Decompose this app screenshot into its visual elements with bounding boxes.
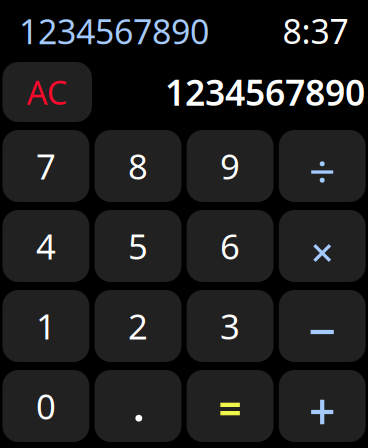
button[interactable]: AC — [2, 62, 92, 122]
button[interactable]: Multiply — [279, 210, 366, 282]
staticText: 0 — [36, 383, 56, 429]
staticText: 9 — [220, 143, 240, 189]
staticText: AC — [27, 70, 68, 114]
button[interactable]: Divide — [279, 130, 366, 202]
staticText: 8 — [128, 143, 148, 189]
button[interactable]: Add — [279, 370, 366, 442]
button[interactable]: 5 — [95, 210, 181, 282]
staticText: 3 — [220, 303, 240, 349]
button[interactable]: 7 — [2, 130, 89, 202]
button[interactable]: Equals — [187, 370, 273, 442]
button[interactable]: 2 — [95, 290, 181, 362]
staticText: 1234567890 — [165, 68, 365, 116]
staticText: 6 — [220, 223, 240, 269]
staticText: 8:37 — [282, 8, 348, 54]
staticText: 5 — [128, 223, 148, 269]
button[interactable]: 6 — [187, 210, 273, 282]
button[interactable]: Decimal point — [95, 370, 181, 442]
button[interactable]: 3 — [187, 290, 273, 362]
staticText: 1234567890 — [19, 8, 209, 54]
staticText: 1 — [36, 303, 56, 349]
button[interactable]: 4 — [2, 210, 89, 282]
button[interactable]: 9 — [187, 130, 273, 202]
staticText: 4 — [36, 223, 56, 269]
button[interactable]: 0 — [2, 370, 89, 442]
staticText: 2 — [128, 303, 148, 349]
button[interactable]: 1 — [2, 290, 89, 362]
staticText: 7 — [36, 143, 56, 189]
button[interactable]: Subtract — [279, 290, 366, 362]
button[interactable]: 8 — [95, 130, 181, 202]
